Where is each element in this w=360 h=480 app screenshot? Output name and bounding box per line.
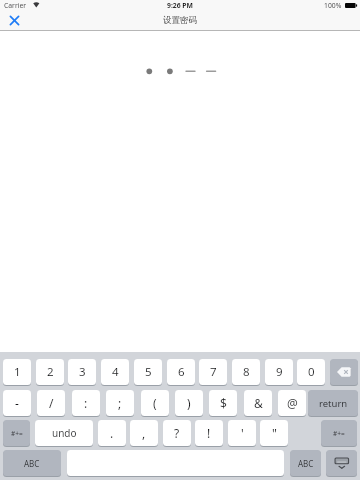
button[interactable]: ) <box>175 390 203 416</box>
staticText: ( <box>153 395 157 411</box>
button[interactable]: / <box>37 390 65 416</box>
button[interactable]: 1 <box>3 359 31 385</box>
button[interactable]: : <box>72 390 100 416</box>
button[interactable]: ABC <box>3 450 61 476</box>
button[interactable]: #+= <box>3 420 30 446</box>
staticText: ! <box>207 425 211 441</box>
staticText: return <box>319 397 348 410</box>
staticText: : <box>84 395 88 411</box>
button[interactable] <box>330 359 358 385</box>
button[interactable]: ; <box>106 390 134 416</box>
button[interactable]: ' <box>228 420 256 446</box>
staticText: @ <box>287 395 298 411</box>
button[interactable]: ! <box>195 420 223 446</box>
staticText: 7 <box>210 364 217 380</box>
button[interactable]: return <box>308 390 358 416</box>
staticText: " <box>272 425 277 441</box>
staticText: 0 <box>308 364 315 380</box>
button[interactable] <box>5 11 23 29</box>
button[interactable]: undo <box>35 420 93 446</box>
staticText: 4 <box>112 364 119 380</box>
staticText: & <box>254 395 263 411</box>
staticText: $ <box>220 395 227 411</box>
staticText: 9:26 PM <box>167 1 193 10</box>
button[interactable]: 7 <box>199 359 227 385</box>
button[interactable]: $ <box>209 390 237 416</box>
staticText: undo <box>52 426 77 440</box>
button[interactable]: - <box>3 390 31 416</box>
button[interactable]: . <box>98 420 126 446</box>
staticText: ' <box>241 425 244 441</box>
button[interactable] <box>326 450 357 476</box>
staticText: 3 <box>79 364 86 380</box>
staticText: 5 <box>145 364 152 380</box>
staticText: ; <box>118 395 122 411</box>
staticText: Carrier <box>4 1 27 10</box>
button[interactable]: 6 <box>167 359 195 385</box>
staticText: / <box>49 395 54 411</box>
staticText: ABC <box>298 458 314 469</box>
staticText: 1 <box>14 364 21 380</box>
staticText: ABC <box>24 458 40 469</box>
staticText: , <box>142 425 146 441</box>
staticText: 100% <box>324 1 342 10</box>
staticText: #+= <box>11 429 23 438</box>
button[interactable]: ( <box>141 390 169 416</box>
staticText: 9 <box>276 364 283 380</box>
staticText: ? <box>174 425 180 441</box>
button[interactable]: ? <box>163 420 191 446</box>
button[interactable]: @ <box>278 390 306 416</box>
button[interactable]: & <box>244 390 272 416</box>
button[interactable]: 2 <box>36 359 64 385</box>
staticText: ) <box>187 395 191 411</box>
button[interactable]: #+= <box>321 420 357 446</box>
button[interactable]: 9 <box>265 359 293 385</box>
staticText: - <box>15 395 19 411</box>
staticText: 设置密码 <box>163 15 197 26</box>
button[interactable]: " <box>260 420 288 446</box>
button[interactable]: ABC <box>290 450 321 476</box>
button[interactable]: 3 <box>68 359 96 385</box>
staticText: 6 <box>178 364 185 380</box>
button[interactable]: , <box>130 420 158 446</box>
button[interactable]: 0 <box>297 359 325 385</box>
staticText: 2 <box>47 364 54 380</box>
staticText: . <box>110 425 114 441</box>
staticText: 8 <box>243 364 250 380</box>
staticText: #+= <box>333 429 345 438</box>
button[interactable]: 5 <box>134 359 162 385</box>
button[interactable]: 8 <box>232 359 260 385</box>
button[interactable]: 4 <box>101 359 129 385</box>
